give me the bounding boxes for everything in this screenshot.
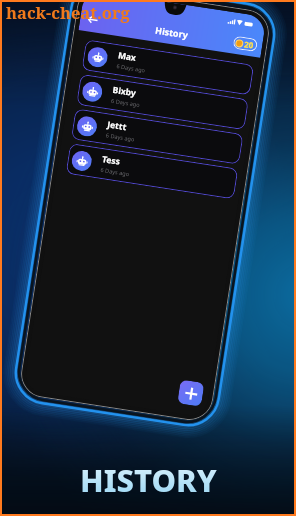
staticText: 6 Days ago bbox=[116, 62, 146, 74]
button[interactable]: Add bbox=[177, 379, 205, 407]
button[interactable]: Bixby bbox=[76, 74, 249, 130]
staticText: HISTORY bbox=[80, 459, 217, 501]
button[interactable]: Jettt bbox=[71, 108, 244, 165]
staticText: 6 Days ago bbox=[100, 166, 130, 178]
button[interactable]: 20 bbox=[232, 36, 258, 52]
staticText: hack-cheat.org bbox=[6, 1, 130, 23]
staticText: 6 Days ago bbox=[111, 97, 140, 109]
staticText: Max bbox=[117, 49, 138, 64]
staticText: History bbox=[154, 24, 189, 40]
button[interactable]: Back bbox=[85, 11, 104, 30]
button[interactable]: Tess bbox=[66, 143, 238, 199]
staticText: Jettt bbox=[107, 118, 127, 133]
staticText: 20 bbox=[243, 38, 255, 51]
staticText: Tess bbox=[101, 153, 121, 168]
staticText: Bixby bbox=[112, 84, 137, 99]
button[interactable]: Max bbox=[81, 39, 254, 96]
staticText: 6 Days ago bbox=[105, 131, 135, 144]
